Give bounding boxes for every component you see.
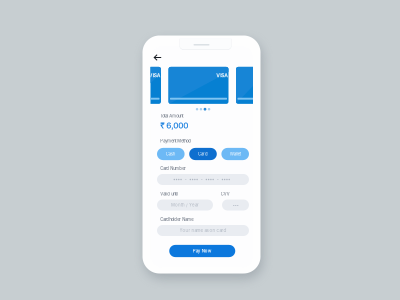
button[interactable]: Card	[189, 148, 217, 160]
staticText: •••	[232, 202, 238, 208]
staticText: Your name as on card	[179, 228, 226, 233]
button[interactable]: Pay Now	[169, 245, 235, 257]
staticText: Month / Year	[171, 202, 199, 208]
button[interactable]: Wallet	[221, 148, 249, 160]
staticText: VISA	[254, 72, 266, 78]
staticText: ₹ 6,000	[160, 121, 188, 130]
staticText: Card	[198, 151, 208, 157]
staticText: Wallet	[230, 151, 241, 157]
staticText: VISA	[216, 72, 228, 78]
staticText: CVV	[221, 191, 230, 196]
staticText: Pay Now	[193, 248, 212, 254]
staticText: Cardholder Name	[160, 217, 193, 222]
staticText: Total Amount	[160, 113, 183, 118]
staticText: Payment Method	[160, 138, 191, 143]
staticText: Cash	[166, 151, 176, 157]
staticText: Valid until	[160, 191, 178, 196]
staticText: Card Number	[160, 166, 186, 171]
button[interactable]: Back	[151, 51, 165, 63]
staticText: VISA	[149, 72, 161, 78]
button[interactable]: Cash	[157, 148, 185, 160]
